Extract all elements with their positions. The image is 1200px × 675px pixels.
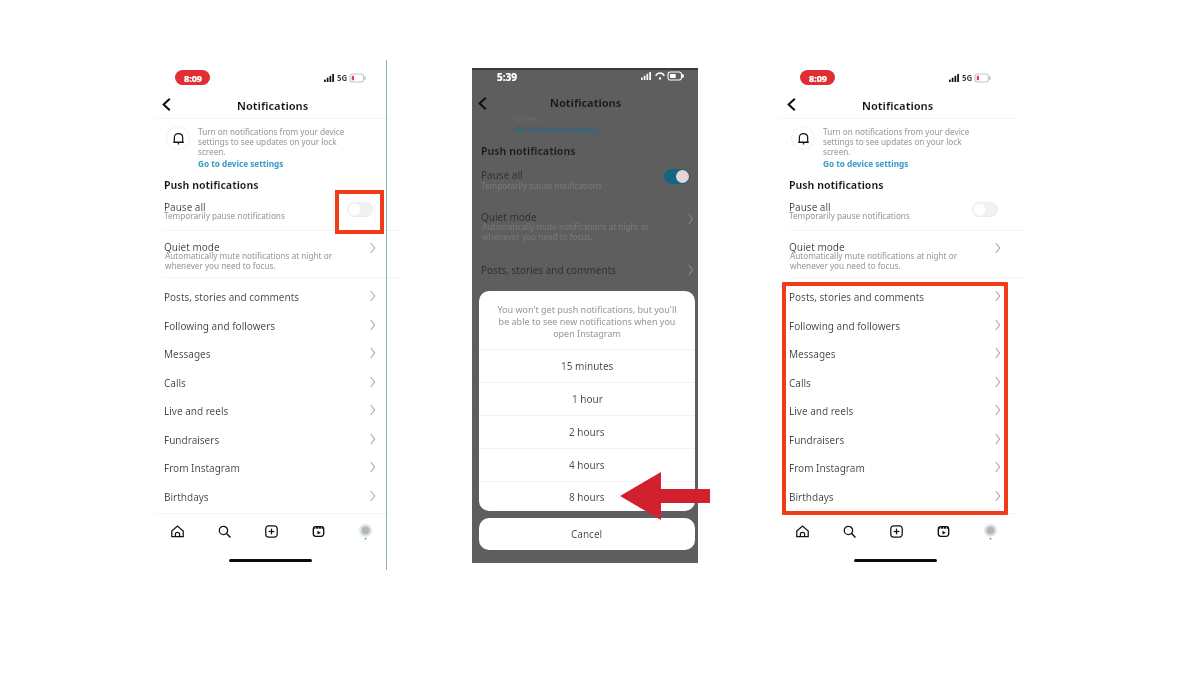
staticText: Pause all: [789, 200, 831, 214]
button[interactable]: 4 hours: [479, 449, 695, 481]
staticText: Temporarily pause notifications: [164, 210, 285, 221]
staticText: 5G: [962, 72, 973, 83]
button[interactable]: Back: [782, 94, 802, 114]
button[interactable]: Fundraisers: [155, 427, 390, 455]
button[interactable]: Birthdays: [780, 484, 1015, 512]
staticText: Quiet mode: [164, 240, 220, 254]
button[interactable]: Pause all toggle: [664, 169, 690, 184]
button[interactable]: Pause all toggle: [347, 202, 373, 217]
staticText: Birthdays: [789, 490, 834, 504]
staticText: Quiet mode: [481, 210, 537, 224]
staticText: Turn on notifications from your device s…: [823, 126, 975, 157]
button[interactable]: Pause all: [780, 196, 1015, 224]
button[interactable]: Home: [792, 521, 812, 541]
staticText: Fundraisers: [789, 433, 845, 447]
button[interactable]: Profile: [980, 521, 1000, 541]
staticText: Live and reels: [164, 404, 229, 418]
staticText: Push notifications: [481, 144, 576, 158]
button[interactable]: Reels: [308, 521, 328, 541]
staticText: Notifications: [862, 98, 934, 113]
button[interactable]: Create: [261, 521, 281, 541]
staticText: Temporarily pause notifications: [481, 180, 602, 191]
staticText: 4 hours: [569, 458, 605, 472]
staticText: Following and followers: [789, 319, 901, 333]
staticText: Notifications: [550, 95, 622, 110]
staticText: screen.: [514, 113, 542, 124]
button[interactable]: Posts, stories and comments: [155, 284, 390, 312]
button[interactable]: Messages: [155, 341, 390, 369]
button[interactable]: Pause all toggle: [972, 202, 998, 217]
staticText: 5:39: [497, 70, 517, 84]
staticText: Pause all: [481, 168, 523, 182]
staticText: Posts, stories and comments: [481, 263, 617, 277]
staticText: Notifications: [237, 98, 309, 113]
button[interactable]: 15 minutes: [479, 350, 695, 382]
button[interactable]: Go to device settings: [823, 158, 909, 169]
button[interactable]: Quiet mode: [472, 208, 698, 242]
button[interactable]: Quiet mode: [155, 237, 390, 271]
button[interactable]: Back: [473, 93, 493, 113]
button[interactable]: Pause all: [155, 196, 390, 224]
staticText: Push notifications: [164, 178, 259, 192]
button[interactable]: Following and followers: [155, 313, 390, 341]
button[interactable]: Posts, stories and comments: [472, 259, 698, 285]
staticText: 2 hours: [569, 425, 605, 439]
staticText: Go to device settings: [823, 158, 909, 169]
staticText: Go to device settings: [198, 158, 284, 169]
staticText: 8 hours: [569, 490, 605, 504]
button[interactable]: From Instagram: [155, 455, 390, 483]
staticText: Pause all: [164, 200, 206, 214]
button[interactable]: Calls: [780, 370, 1015, 398]
staticText: You won't get push notifications, but yo…: [497, 303, 677, 339]
staticText: 8:09: [809, 72, 827, 84]
staticText: 5G: [337, 72, 348, 83]
staticText: Go to device settings: [514, 124, 600, 135]
staticText: Messages: [164, 347, 211, 361]
staticText: Fundraisers: [164, 433, 220, 447]
button[interactable]: Go to device settings: [198, 158, 284, 169]
staticText: Calls: [164, 376, 186, 390]
staticText: From Instagram: [789, 461, 865, 475]
button[interactable]: Cancel: [479, 518, 695, 550]
button[interactable]: Search: [214, 521, 234, 541]
staticText: From Instagram: [164, 461, 240, 475]
button[interactable]: Create: [886, 521, 906, 541]
staticText: Quiet mode: [789, 240, 845, 254]
button[interactable]: Search: [839, 521, 859, 541]
staticText: Posts, stories and comments: [164, 290, 300, 304]
staticText: Posts, stories and comments: [789, 290, 925, 304]
staticText: Push notifications: [789, 178, 884, 192]
button[interactable]: Posts, stories and comments: [780, 284, 1015, 312]
staticText: Automatically mute notifications at nigh…: [482, 221, 672, 242]
staticText: Automatically mute notifications at nigh…: [790, 250, 980, 271]
staticText: Calls: [789, 376, 811, 390]
button[interactable]: Profile: [355, 521, 375, 541]
button[interactable]: From Instagram: [780, 455, 1015, 483]
button[interactable]: 8 hours: [479, 482, 695, 511]
button[interactable]: Calls: [155, 370, 390, 398]
button[interactable]: Live and reels: [155, 398, 390, 426]
staticText: Turn on notifications from your device s…: [198, 126, 350, 157]
button[interactable]: Pause all: [472, 165, 698, 191]
button[interactable]: 2 hours: [479, 416, 695, 448]
button[interactable]: 1 hour: [479, 383, 695, 415]
button[interactable]: Fundraisers: [780, 427, 1015, 455]
staticText: 8:09: [184, 72, 202, 84]
staticText: Messages: [789, 347, 836, 361]
staticText: Birthdays: [164, 490, 209, 504]
button[interactable]: Back: [157, 94, 177, 114]
staticText: Cancel: [571, 527, 603, 541]
staticText: Temporarily pause notifications: [789, 210, 910, 221]
staticText: Live and reels: [789, 404, 854, 418]
button[interactable]: Messages: [780, 341, 1015, 369]
staticText: Following and followers: [164, 319, 276, 333]
button[interactable]: Following and followers: [780, 313, 1015, 341]
button[interactable]: Live and reels: [780, 398, 1015, 426]
staticText: 1 hour: [572, 392, 603, 406]
button[interactable]: Reels: [933, 521, 953, 541]
button[interactable]: Home: [167, 521, 187, 541]
staticText: 15 minutes: [561, 359, 614, 373]
button[interactable]: Birthdays: [155, 484, 390, 512]
staticText: Automatically mute notifications at nigh…: [165, 250, 355, 271]
button[interactable]: Quiet mode: [780, 237, 1015, 271]
